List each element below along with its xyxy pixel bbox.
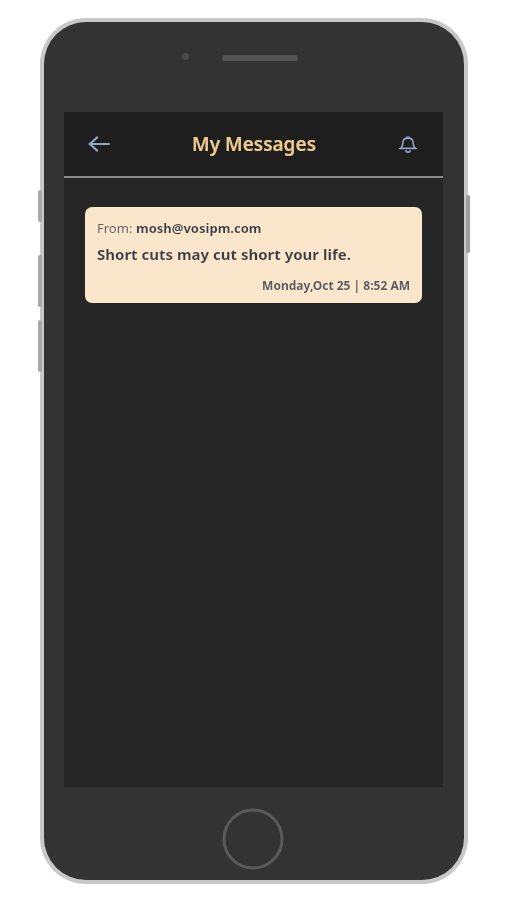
staticText: Monday,Oct 25 | 8:52 AM [97, 277, 410, 293]
button[interactable]: From: [85, 207, 422, 303]
staticText: From: [97, 219, 136, 237]
button[interactable]: Back [78, 123, 120, 165]
staticText: My Messages [192, 131, 316, 157]
staticText: mosh@vosipm.com [136, 219, 262, 237]
button[interactable]: Notifications [387, 123, 429, 165]
staticText: Short cuts may cut short your life. [97, 244, 351, 264]
